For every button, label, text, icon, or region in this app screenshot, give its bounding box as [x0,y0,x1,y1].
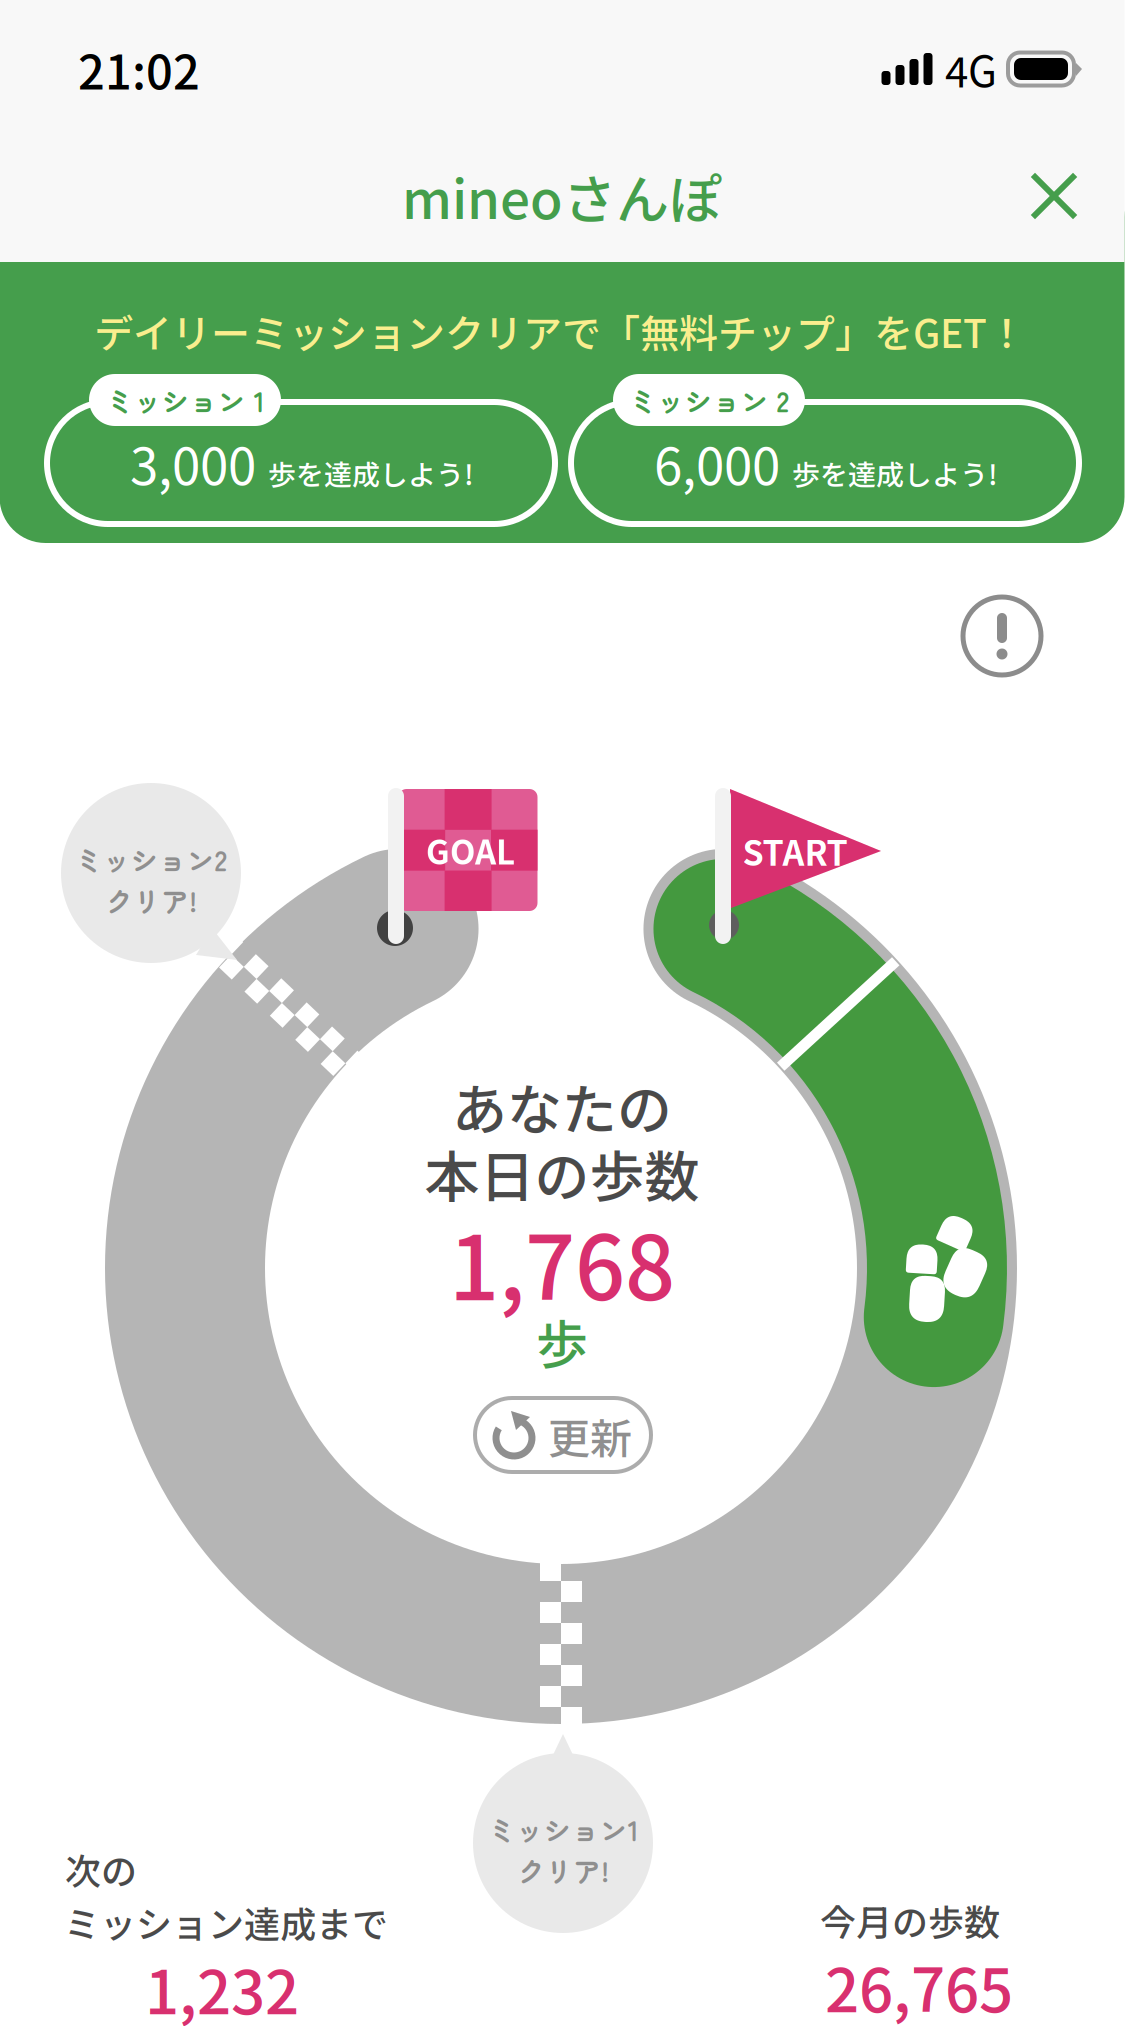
staticText: 26,765 [825,1943,1013,2026]
staticText: 1,768 [449,1198,675,1326]
staticText: クリア! [105,880,197,920]
staticText: 6,000 [654,426,780,500]
staticText: ミッション 1 [105,380,264,420]
staticText: 21:02 [78,35,200,103]
staticText: 更新 [548,1406,632,1466]
staticText: 歩を達成しよう! [268,453,474,493]
staticText: 1,232 [145,1945,299,2026]
staticText: 次の [65,1843,137,1895]
staticText: クリア! [517,1850,609,1890]
button[interactable]: 閉じる [1006,148,1102,244]
staticText: ミッション達成まで [64,1896,388,1948]
staticText: デイリーミッションクリアで「無料チップ」をGET！ [94,303,1026,359]
staticText: 今月の歩数 [820,1894,1000,1946]
staticText: あなたの [452,1066,672,1146]
button[interactable]: 更新 [475,1398,651,1472]
staticText: 歩を達成しよう! [792,453,998,493]
button[interactable]: 説明 [947,581,1057,691]
staticText: START [742,826,847,876]
staticText: 3,000 [130,426,256,500]
staticText: 歩 [536,1303,588,1379]
staticText: ミッション2 [74,839,227,879]
staticText: GOAL [426,826,515,874]
staticText: ミッション 2 [628,380,789,420]
staticText: 4G [945,39,997,99]
staticText: ミッション1 [487,1809,638,1849]
staticText: mineoさんぽ [402,158,722,234]
staticText: 本日の歩数 [424,1133,699,1213]
